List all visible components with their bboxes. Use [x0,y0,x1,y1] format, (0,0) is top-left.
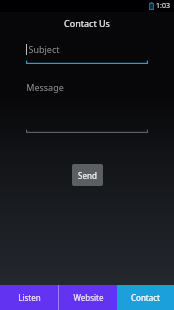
staticText: Contact Us [64,17,110,29]
button[interactable]: Send [72,164,103,186]
staticText: Website [73,292,104,303]
button[interactable]: Website [59,285,117,310]
button[interactable]: Message [26,81,148,134]
staticText: 1:03 [156,1,170,11]
staticText: Message [26,81,64,93]
staticText: Subject [28,43,60,55]
button[interactable]: Subject [26,43,148,65]
staticText: Contact [131,292,160,303]
staticText: Listen [18,292,41,303]
staticText: Send [78,170,97,181]
button[interactable]: Listen [0,285,58,310]
other: Battery [149,2,154,10]
button[interactable]: Contact [117,285,174,310]
